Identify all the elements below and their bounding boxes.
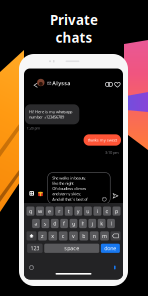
staticText: r (58, 208, 60, 215)
staticText: x (51, 232, 54, 239)
staticText: o (105, 208, 108, 215)
button[interactable]: z (38, 231, 47, 240)
button[interactable]: Delete (110, 231, 120, 240)
staticText: l (110, 220, 111, 227)
staticText: space (64, 245, 79, 252)
staticText: done (104, 245, 116, 252)
button[interactable]: t (65, 206, 73, 216)
button[interactable]: done (101, 244, 120, 253)
button[interactable]: y (74, 206, 82, 216)
staticText: thanks my sweet (88, 137, 117, 143)
staticText: g (72, 220, 75, 227)
staticText: d (53, 220, 56, 227)
button[interactable]: w (36, 206, 44, 216)
button[interactable]: Send (111, 191, 120, 201)
staticText: s (44, 220, 47, 227)
button[interactable]: space (44, 244, 99, 253)
staticText: p (115, 208, 118, 215)
button[interactable]: o (103, 206, 111, 216)
button[interactable]: u (84, 206, 92, 216)
button[interactable]: Apps (27, 189, 36, 198)
button[interactable]: 123 (27, 244, 43, 253)
staticText: m (102, 232, 107, 239)
button[interactable]: n (90, 231, 98, 240)
staticText: k (100, 220, 103, 227)
staticText: f (63, 220, 65, 227)
staticText: b (82, 232, 85, 239)
staticText: 3:10 pm (105, 150, 119, 155)
staticText: q (29, 208, 32, 215)
staticText: 123 (30, 245, 39, 252)
staticText: She walks in beauty, like the night Of c… (52, 175, 87, 202)
button[interactable]: e (46, 206, 54, 216)
staticText: y (77, 208, 80, 215)
button[interactable]: Gift (36, 189, 45, 198)
staticText: Private (50, 11, 98, 29)
staticText: n (93, 232, 96, 239)
button[interactable]: Back (29, 79, 40, 91)
button[interactable]: r (55, 206, 63, 216)
button[interactable]: v (69, 231, 78, 240)
button[interactable]: Favourite (112, 80, 122, 89)
staticText: Alyssa (52, 80, 70, 87)
button[interactable]: l (107, 219, 115, 228)
button[interactable]: j (88, 219, 96, 228)
button[interactable]: h (79, 219, 87, 228)
button[interactable]: m (100, 231, 109, 240)
staticText: v (72, 232, 75, 239)
staticText: u (86, 208, 89, 215)
button[interactable]: Shift (26, 231, 36, 240)
staticText: i (97, 208, 98, 215)
button[interactable]: Incognito (102, 80, 113, 89)
button[interactable]: p (112, 206, 120, 216)
button[interactable]: d (51, 219, 59, 228)
button[interactable]: a (32, 219, 40, 228)
button[interactable]: q (26, 206, 34, 216)
staticText: a (34, 220, 37, 227)
button[interactable]: b (79, 231, 88, 240)
button[interactable]: x (48, 231, 57, 240)
button[interactable]: g (70, 219, 77, 228)
staticText: z (41, 232, 44, 239)
staticText: c (62, 232, 65, 239)
staticText: e (48, 208, 51, 215)
staticText: h (81, 220, 84, 227)
button[interactable]: i (93, 206, 101, 216)
staticText: Hi! Here is my whatsapp number +12345678… (29, 109, 72, 120)
button[interactable]: s (41, 219, 49, 228)
button[interactable]: c (59, 231, 67, 240)
staticText: j (92, 220, 93, 227)
button[interactable]: k (98, 219, 105, 228)
staticText: chats (55, 29, 92, 46)
staticText: w (38, 208, 42, 215)
button[interactable]: f (60, 219, 68, 228)
staticText: 1:28 pm (26, 125, 40, 131)
staticText: t (68, 208, 70, 215)
